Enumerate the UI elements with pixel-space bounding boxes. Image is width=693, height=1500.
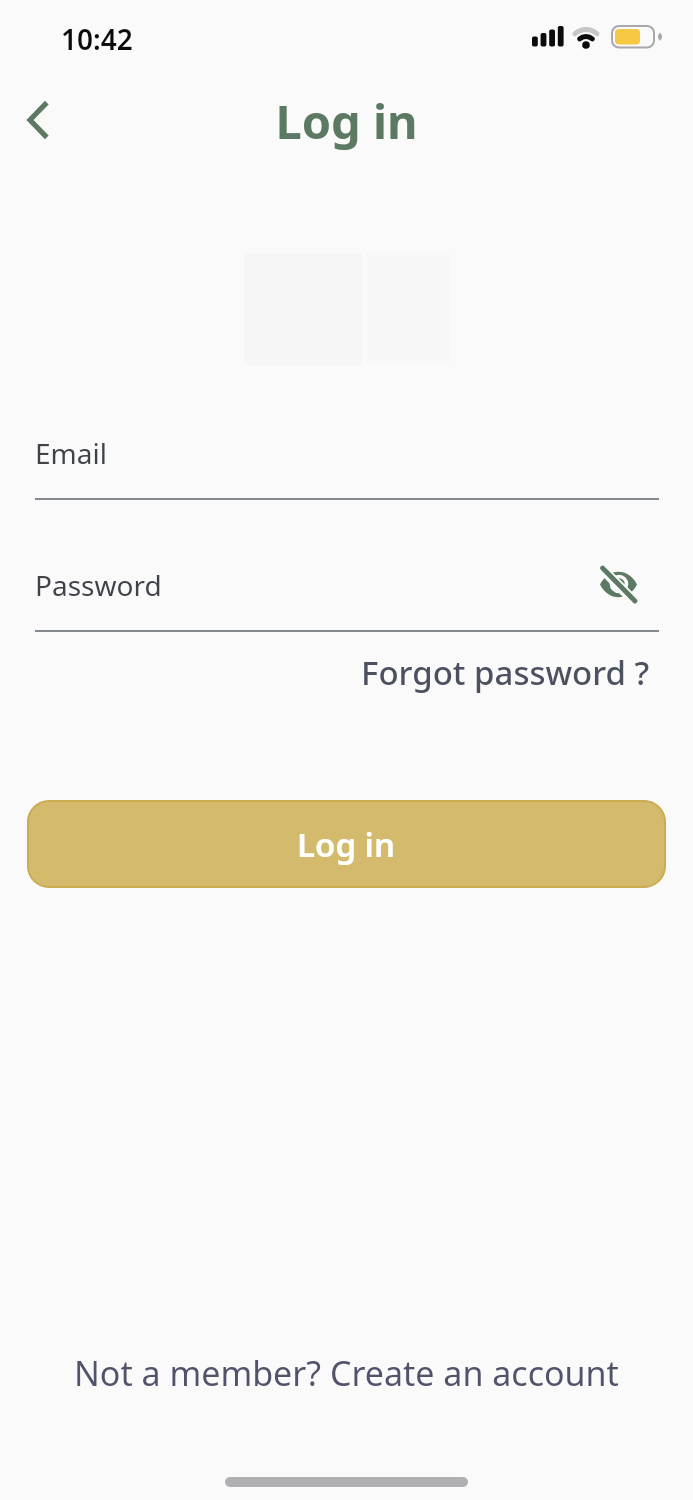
staticText: Not a member? Create an account [74, 1350, 619, 1396]
button[interactable]: Password [0, 552, 693, 632]
staticText: 10:42 [61, 20, 133, 58]
button[interactable]: Log in [27, 800, 666, 888]
staticText: Log in [0, 89, 693, 153]
staticText: Forgot password ? [361, 650, 650, 695]
staticText: Password [35, 566, 162, 604]
staticText: Email [35, 434, 107, 472]
button[interactable]: Email [0, 420, 693, 500]
button[interactable]: Forgot password ? [361, 650, 650, 695]
staticText: Log in [297, 822, 396, 867]
button[interactable]: Not a member? Create an account [74, 1350, 619, 1396]
button[interactable] [14, 96, 62, 144]
